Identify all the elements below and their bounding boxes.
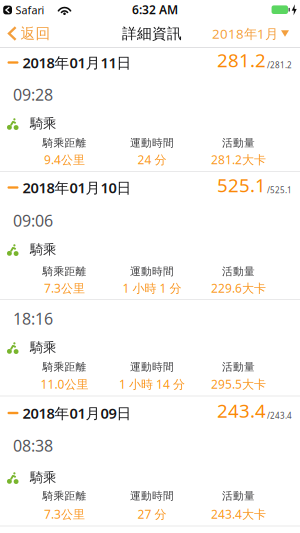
staticText: 運動時間 — [130, 360, 174, 373]
staticText: 11.0公里 — [40, 376, 88, 392]
staticText: 24 分 — [137, 151, 166, 167]
staticText: 281.2 — [217, 48, 266, 72]
staticText: 243.4大卡 — [211, 506, 266, 522]
staticText: 2018年1月 — [212, 25, 278, 42]
staticText: 騎乘 — [30, 339, 56, 356]
staticText: 229.6大卡 — [211, 280, 266, 296]
staticText: 6:32 AM — [132, 1, 178, 17]
staticText: 7.3公里 — [44, 506, 85, 522]
staticText: 7.3公里 — [44, 280, 85, 296]
staticText: 08:38 — [13, 435, 53, 456]
staticText: 27 分 — [137, 506, 166, 522]
staticText: 活動量 — [222, 360, 255, 373]
staticText: /525.1 — [267, 185, 292, 195]
staticText: 2018年01月09日 — [22, 403, 131, 423]
staticText: /243.4 — [267, 410, 292, 421]
staticText: 18:16 — [13, 308, 53, 329]
staticText: 返回 — [21, 24, 51, 42]
staticText: 活動量 — [222, 489, 255, 502]
button[interactable]: Back — [9, 24, 51, 42]
staticText: /281.2 — [267, 60, 292, 70]
staticText: 2018年01月10日 — [22, 178, 131, 197]
staticText: 運動時間 — [130, 265, 174, 278]
staticText: 活動量 — [222, 136, 255, 149]
staticText: 2018年01月11日 — [22, 53, 131, 72]
button[interactable]: Select month — [212, 25, 289, 42]
button[interactable]: Back to Safari — [3, 3, 44, 17]
staticText: 1 小時 1 分 — [122, 280, 181, 296]
staticText: 運動時間 — [130, 489, 174, 502]
staticText: 騎乘距離 — [42, 136, 86, 149]
staticText: 騎乘距離 — [42, 265, 86, 278]
staticText: 09:28 — [13, 84, 53, 105]
staticText: 281.2大卡 — [211, 151, 266, 167]
staticText: 9.4公里 — [44, 151, 85, 167]
staticText: 騎乘 — [30, 469, 56, 486]
staticText: 243.4 — [217, 398, 266, 423]
staticText: 295.5大卡 — [211, 376, 266, 392]
staticText: 09:06 — [13, 210, 53, 231]
staticText: 運動時間 — [130, 136, 174, 149]
staticText: Safari — [15, 3, 44, 17]
staticText: 騎乘距離 — [42, 489, 86, 502]
staticText: 騎乘 — [30, 115, 56, 132]
staticText: 騎乘距離 — [42, 360, 86, 373]
staticText: 詳細資訊 — [122, 24, 182, 42]
staticText: 騎乘 — [30, 241, 56, 258]
staticText: 525.1 — [217, 173, 266, 197]
staticText: 活動量 — [222, 265, 255, 278]
staticText: 1 小時 14 分 — [119, 376, 185, 392]
